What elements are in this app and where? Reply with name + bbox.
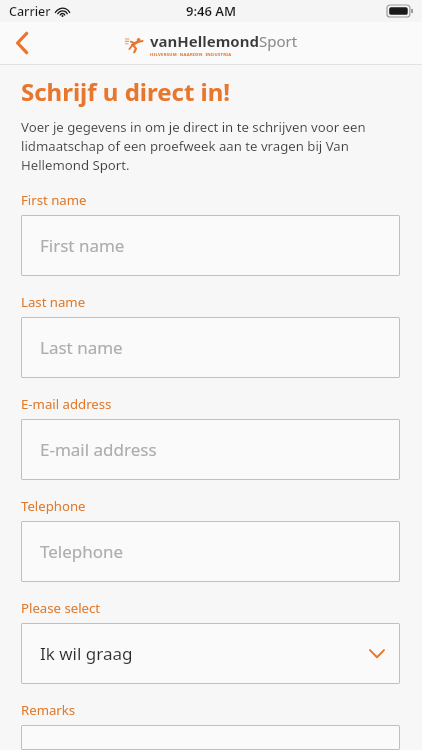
staticText: Telephone <box>40 540 124 563</box>
staticText: Remarks <box>21 701 76 719</box>
button[interactable]: First name <box>21 215 400 276</box>
staticText: Ik wil graag <box>40 642 133 665</box>
staticText: Last name <box>21 293 86 311</box>
staticText: Last name <box>40 336 123 359</box>
staticText: Telephone <box>21 497 86 515</box>
button[interactable]: Last name <box>21 317 400 378</box>
staticText: Voer je gegevens in om je direct in te s… <box>21 118 400 174</box>
staticText: E-mail address <box>40 438 157 461</box>
staticText: vanHellemond <box>150 31 259 51</box>
button[interactable]: Back <box>0 22 44 64</box>
staticText: Schrijf u direct in! <box>21 75 231 108</box>
staticText: First name <box>21 191 87 209</box>
staticText: Sport <box>259 31 298 51</box>
staticText: Please select <box>21 599 101 617</box>
button[interactable]: E-mail address <box>21 419 400 480</box>
staticText: E-mail address <box>21 395 112 413</box>
staticText: 9:46 AM <box>186 2 237 20</box>
button[interactable]: Ik wil graag <box>21 623 400 684</box>
staticText: Carrier <box>9 3 51 20</box>
button[interactable]: Telephone <box>21 521 400 582</box>
staticText: First name <box>40 234 125 257</box>
button[interactable] <box>21 725 400 750</box>
staticText: HILVERSUM NAARDEN INDUSTRIA <box>150 52 232 58</box>
